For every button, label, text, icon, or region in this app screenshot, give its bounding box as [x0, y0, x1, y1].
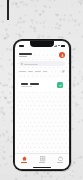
- button[interactable]: Browse: [33, 154, 51, 165]
- button[interactable]: Profile: [59, 52, 65, 58]
- button[interactable]: Status: [57, 82, 63, 88]
- button[interactable]: Search: [19, 61, 65, 66]
- button[interactable]: Sort: [62, 70, 65, 73]
- button[interactable]: Home: [15, 154, 33, 165]
- button[interactable]: Status: [18, 78, 66, 91]
- button[interactable]: Orders: [51, 154, 69, 165]
